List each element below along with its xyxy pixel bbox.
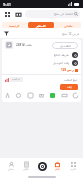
staticText: المتجر (36, 24, 46, 27)
staticText: وقت التوصيل (53, 61, 70, 65)
staticText: البحث عن منتج (54, 12, 73, 16)
button[interactable]: Cart (14, 10, 22, 18)
button[interactable]: السلة (50, 162, 64, 170)
staticText: المزيد (66, 168, 80, 170)
staticText: قيد التنفيذ (12, 78, 21, 81)
button[interactable]: إعادة (60, 84, 78, 90)
button[interactable]: طلباتي (19, 162, 33, 170)
staticText: تتبع الطلب (64, 78, 78, 82)
button[interactable]: Action 0 (4, 92, 11, 99)
button[interactable]: التفاصيل (52, 42, 78, 49)
button[interactable]: Action 5 (61, 92, 68, 99)
button[interactable]: طلب #2481 (2, 39, 81, 102)
button[interactable]: المزيد (66, 162, 80, 170)
button[interactable]: Home (35, 162, 49, 171)
button[interactable]: Action 1 (15, 92, 22, 99)
staticText: طريقة الدفع (54, 53, 70, 57)
staticText: السلة (50, 168, 64, 170)
staticText: الرئيسية (9, 24, 20, 27)
button[interactable]: Action 2 (27, 92, 34, 99)
button[interactable]: البحث عن منتج (25, 10, 80, 18)
button[interactable]: Action 3 (38, 92, 45, 99)
staticText: طلباتي (64, 24, 73, 27)
staticText: إعادة (67, 86, 72, 88)
staticText: طلباتي (19, 168, 33, 170)
staticText: 9:41 (3, 2, 11, 7)
button[interactable]: طلباتي (55, 22, 81, 28)
button[interactable]: Filter (3, 30, 10, 37)
button[interactable]: الرئيسية (2, 22, 27, 28)
staticText: 125 ر.س (61, 68, 74, 72)
staticText: حسابي (4, 168, 18, 170)
button[interactable]: Action 4 (49, 92, 56, 99)
button[interactable]: حسابي (4, 162, 18, 170)
staticText: طلب #2481 (16, 43, 32, 47)
button[interactable]: Menu (3, 10, 11, 18)
staticText: التفاصيل (60, 44, 71, 47)
button[interactable]: المتجر (28, 22, 54, 28)
button[interactable]: Action 6 (72, 92, 79, 99)
staticText: عرض 12 منتج (62, 32, 80, 36)
